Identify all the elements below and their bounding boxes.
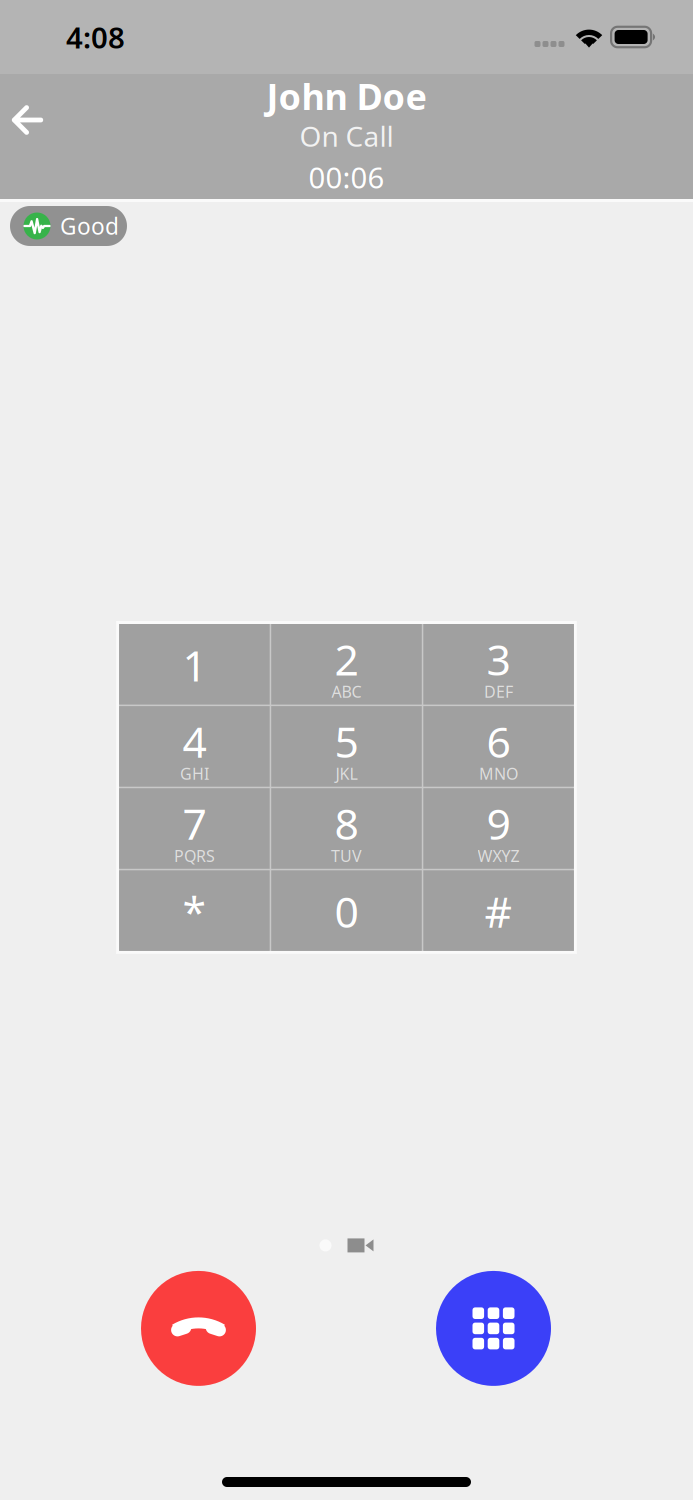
staticText: 4 [182,713,206,769]
staticText: # [485,883,513,940]
staticText: 1 [182,637,206,693]
button[interactable]: * [119,870,270,951]
button[interactable]: 6 [423,706,574,787]
staticText: 4:08 [66,17,125,56]
button[interactable]: # [423,870,574,951]
staticText: 3 [487,631,511,687]
staticText: ABC [331,681,361,702]
staticText: On Call [299,117,393,155]
staticText: * [182,883,206,940]
staticText: TUV [331,845,362,866]
staticText: MNO [479,763,518,784]
staticText: WXYZ [478,845,520,866]
button[interactable]: Show keypad [436,1271,551,1386]
staticText: 0 [334,883,358,940]
button[interactable]: 5 [271,706,422,787]
button[interactable]: 4 [119,706,270,787]
staticText: JKL [335,763,357,784]
staticText: John Doe [266,72,426,120]
button[interactable]: 9 [423,788,574,869]
staticText: 2 [334,631,358,687]
staticText: 6 [487,713,511,769]
staticText: 8 [334,795,358,852]
staticText: 5 [334,713,358,769]
button[interactable]: End call [141,1271,256,1386]
button[interactable]: Back [0,89,54,151]
button[interactable]: 1 [119,624,270,705]
button[interactable]: 8 [271,788,422,869]
staticText: 00:06 [308,157,384,196]
staticText: DEF [484,681,513,702]
button[interactable]: 0 [271,870,422,951]
staticText: GHI [180,763,209,784]
button[interactable]: 7 [119,788,270,869]
staticText: Good [60,211,119,241]
staticText: 7 [182,795,206,852]
button[interactable]: 3 [423,624,574,705]
staticText: PQRS [174,845,215,866]
staticText: 9 [487,795,511,852]
button[interactable]: 2 [271,624,422,705]
